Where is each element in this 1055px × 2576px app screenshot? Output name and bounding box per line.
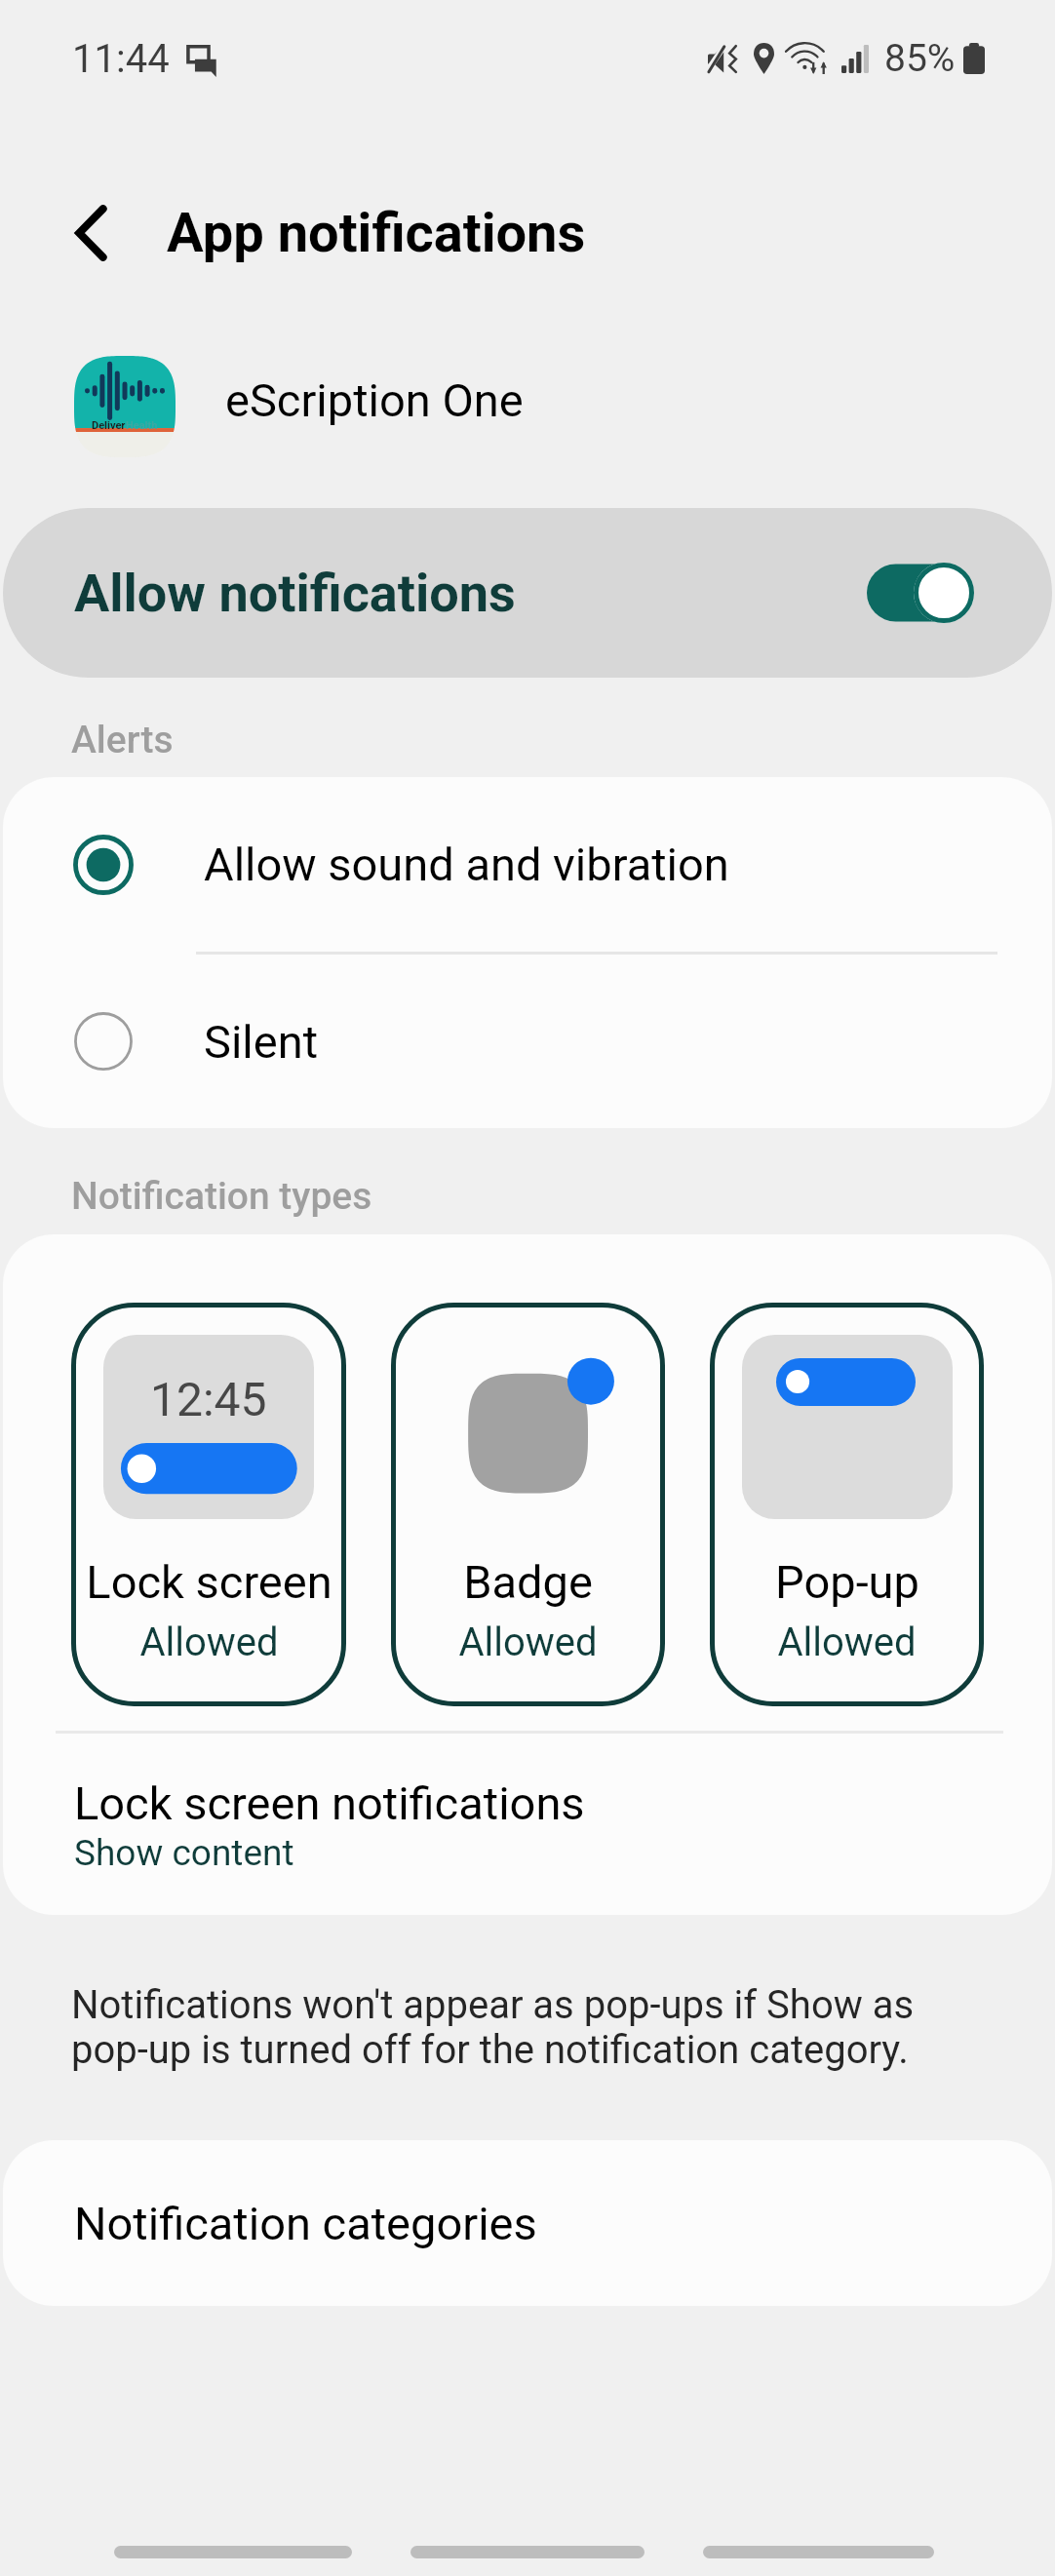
staticText: Lock screen [86,1555,332,1609]
staticText: Notification categories [74,2197,537,2250]
button[interactable]: Navigate up [44,186,137,280]
staticText: eScription One [225,373,524,427]
button[interactable]: Recents [114,2503,352,2576]
button[interactable]: Silent [3,955,1052,1128]
staticText: Alerts [71,718,174,762]
button[interactable]: 12:45 [71,1303,346,1706]
button[interactable]: Lock screen notifications [3,1734,1052,1907]
staticText: Show content [74,1832,294,1874]
staticText: 11:44 [72,36,170,82]
staticText: Allowed [458,1620,598,1665]
staticText: Notifications won't appear as pop-ups if… [71,1982,918,2073]
button[interactable]: Notification categories [3,2140,1052,2306]
staticText: Allowed [139,1620,279,1665]
button[interactable]: Allow notifications [3,508,1052,678]
staticText: Pop-up [775,1555,919,1609]
staticText: App notifications [167,201,586,265]
staticText: Deliver [92,419,126,432]
button[interactable]: Back [703,2503,934,2576]
staticText: Allowed [777,1620,917,1665]
staticText: Notification types [71,1174,372,1219]
staticText: 85% [884,36,956,81]
staticText: 12:45 [150,1372,267,1426]
staticText: Health [126,419,158,432]
button[interactable]: Badge [391,1303,665,1706]
button[interactable]: Pop-up [710,1303,984,1706]
button[interactable]: Allow sound and vibration [3,777,1052,952]
button[interactable]: Home [410,2503,645,2576]
staticText: Badge [463,1555,593,1609]
staticText: Allow sound and vibration [204,838,729,891]
staticText: Lock screen notifications [74,1776,585,1830]
staticText: Allow notifications [74,563,516,624]
staticText: Silent [204,1015,319,1069]
